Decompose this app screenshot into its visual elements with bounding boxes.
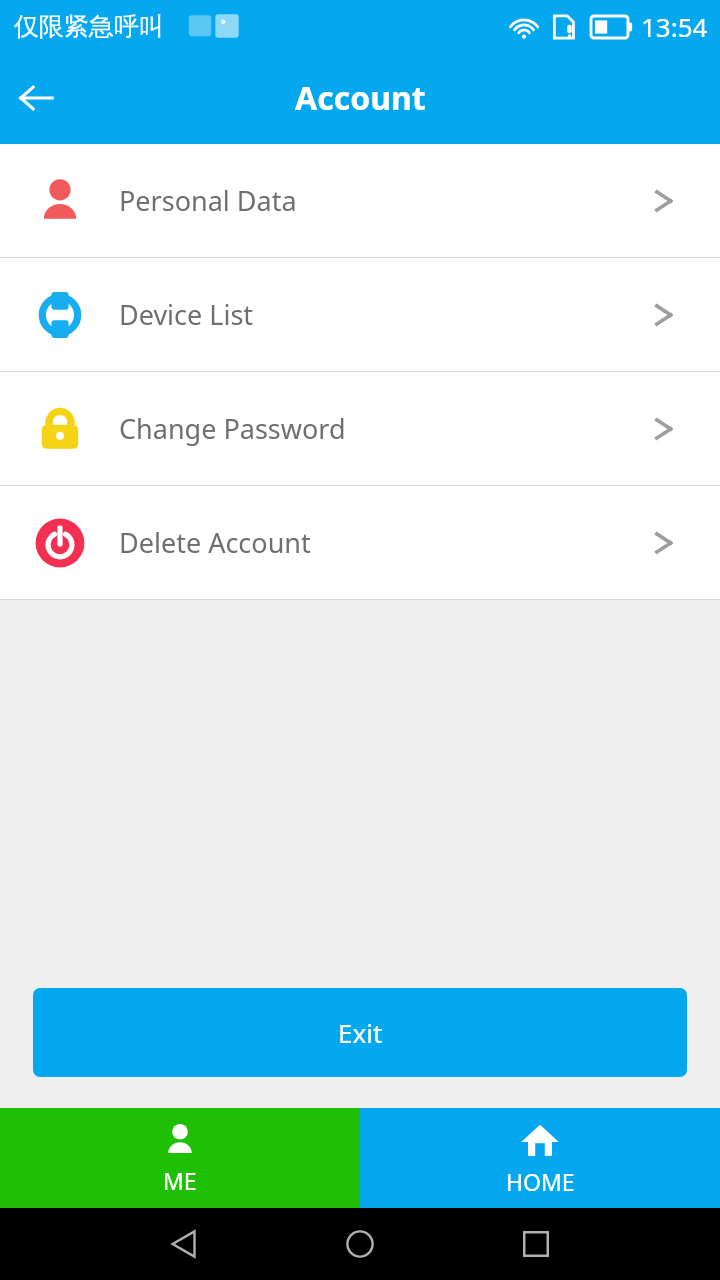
staticText: 仅限紧急呼叫 xyxy=(14,11,164,42)
button[interactable]: Back xyxy=(0,62,72,134)
button[interactable]: ME xyxy=(0,1108,360,1208)
button[interactable]: Recents xyxy=(512,1220,560,1268)
staticText: Delete Account xyxy=(119,524,311,561)
staticText: Account xyxy=(295,76,426,120)
staticText: 13:54 xyxy=(641,9,708,44)
button[interactable]: HOME xyxy=(360,1108,720,1208)
button[interactable]: Delete Account xyxy=(0,486,720,599)
staticText: HOME xyxy=(506,1166,575,1197)
button[interactable]: Change Password xyxy=(0,372,720,485)
staticText: Device List xyxy=(119,296,254,333)
staticText: Exit xyxy=(338,1015,383,1050)
button[interactable]: Device List xyxy=(0,258,720,371)
staticText: ME xyxy=(163,1165,197,1196)
staticText: Change Password xyxy=(119,410,346,447)
button[interactable]: Back xyxy=(160,1220,208,1268)
button[interactable]: Personal Data xyxy=(0,144,720,257)
staticText: Personal Data xyxy=(119,182,297,219)
button[interactable]: Home xyxy=(336,1220,384,1268)
button[interactable]: Exit xyxy=(33,988,687,1077)
